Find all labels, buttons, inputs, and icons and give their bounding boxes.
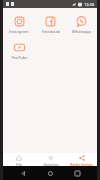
staticText: Instagram (9, 29, 29, 34)
staticText: Redes Sociais (70, 162, 93, 166)
staticText: Favoritos (43, 162, 59, 166)
button[interactable]: YouTube (3, 40, 35, 62)
button[interactable]: Whatsapp (66, 14, 97, 36)
button[interactable]: Favoritos (35, 153, 66, 166)
button[interactable]: Facebook (35, 14, 66, 36)
staticText: Fila (16, 162, 22, 166)
button[interactable]: Back (16, 166, 30, 180)
button[interactable]: Recents (70, 166, 84, 180)
button[interactable]: Fila (3, 153, 35, 166)
staticText: YouTube (11, 55, 28, 60)
staticText: 12:30 (84, 2, 95, 7)
button[interactable]: Redes Sociais (66, 153, 97, 166)
button[interactable]: Home (43, 166, 57, 180)
button[interactable]: Instagram (3, 14, 35, 36)
staticText: Facebook (42, 29, 60, 34)
staticText: Whatsapp (72, 29, 91, 34)
